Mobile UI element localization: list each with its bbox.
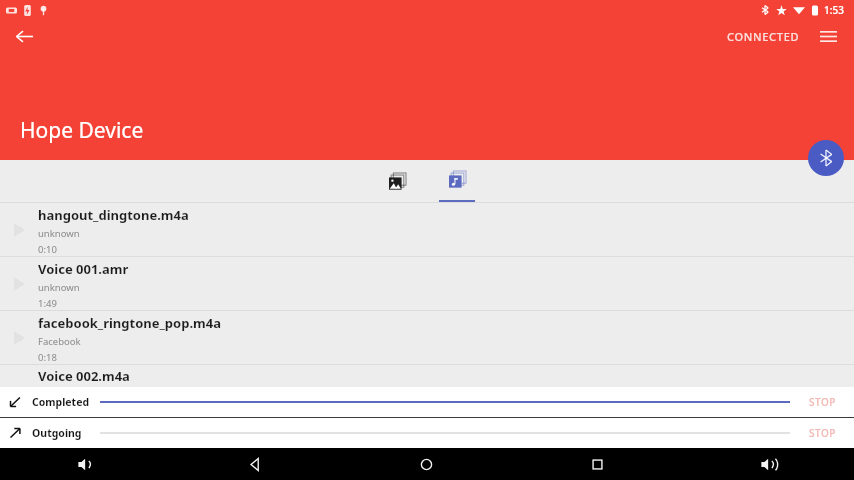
- staticText: CONNECTED: [727, 29, 800, 44]
- staticText: hangout_dingtone.m4a: [38, 206, 189, 224]
- staticText: Outgoing: [32, 426, 82, 440]
- button[interactable]: facebook_ringtone_pop.m4a: [0, 311, 854, 364]
- button[interactable]: Audio: [427, 160, 487, 202]
- staticText: Completed: [32, 395, 90, 409]
- button[interactable]: Home: [341, 448, 512, 480]
- button[interactable]: Photos: [367, 160, 427, 202]
- button[interactable]: Menu: [806, 20, 850, 52]
- staticText: 0:18: [38, 351, 57, 364]
- staticText: facebook_ringtone_pop.m4a: [38, 314, 221, 332]
- button[interactable]: STOP: [790, 418, 854, 448]
- button[interactable]: STOP: [790, 387, 854, 417]
- button[interactable]: Volume up: [683, 448, 854, 480]
- staticText: STOP: [809, 395, 836, 409]
- staticText: unknown: [38, 281, 80, 294]
- staticText: 1:49: [38, 297, 57, 310]
- staticText: 1:53: [824, 3, 844, 17]
- button[interactable]: Completed: [0, 387, 854, 417]
- button[interactable]: hangout_dingtone.m4a: [0, 203, 854, 256]
- button[interactable]: Voice 002.m4a: [0, 365, 854, 387]
- button[interactable]: Bluetooth: [808, 140, 844, 176]
- button[interactable]: Recents: [512, 448, 683, 480]
- button[interactable]: CONNECTED: [721, 23, 806, 50]
- button[interactable]: Back: [0, 20, 48, 52]
- staticText: STOP: [809, 426, 836, 440]
- staticText: Facebook: [38, 335, 81, 348]
- button[interactable]: Back: [170, 448, 341, 480]
- staticText: Voice 002.m4a: [38, 367, 130, 385]
- staticText: unknown: [38, 227, 80, 240]
- staticText: Hope Device: [20, 116, 144, 145]
- button[interactable]: Voice 001.amr: [0, 257, 854, 310]
- staticText: 0:10: [38, 243, 57, 256]
- button[interactable]: Outgoing: [0, 418, 854, 448]
- button[interactable]: Volume down: [0, 448, 170, 480]
- staticText: Voice 001.amr: [38, 260, 129, 278]
